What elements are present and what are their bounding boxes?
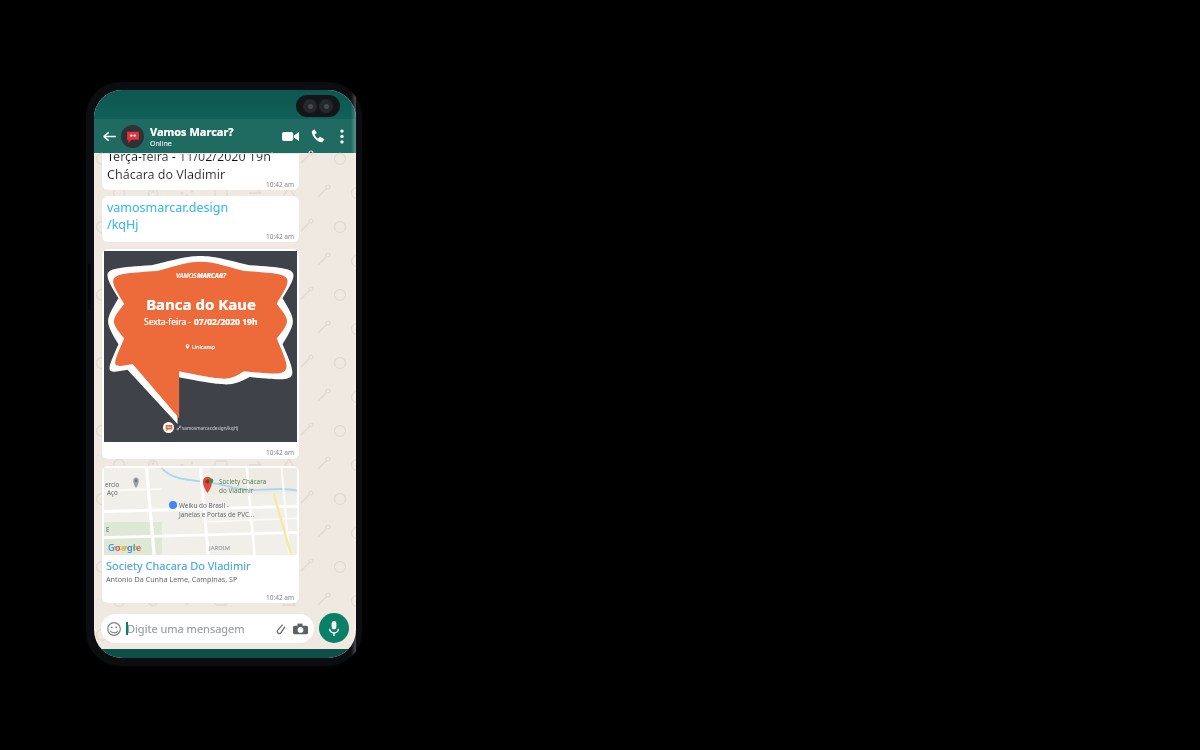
staticText: 10:42 am <box>266 232 295 241</box>
staticText: G <box>108 541 115 553</box>
button[interactable]: More options <box>332 126 352 146</box>
button[interactable]: Camera <box>293 623 308 635</box>
button[interactable]: Digite uma mensagem <box>101 614 314 643</box>
staticText: Antonio Da Cunha Leme, Campinas, SP <box>106 574 238 584</box>
staticText: VAMOS <box>176 271 197 280</box>
staticText: g <box>127 541 133 553</box>
staticText: l <box>133 541 136 553</box>
staticText: Chácara do Vladimir <box>107 166 226 183</box>
button[interactable]: Terça-feira - 11/02/2020 19h <box>102 154 299 190</box>
staticText: Sexta-feira - <box>144 316 194 328</box>
staticText: 07/02/2020 19h <box>194 316 258 328</box>
staticText: o <box>121 541 127 553</box>
staticText: 10:42 am <box>266 448 295 457</box>
button[interactable]: Record voice message <box>319 613 349 643</box>
staticText: vamosmarcar.design <box>107 199 229 216</box>
staticText: JARDIM <box>209 544 231 552</box>
staticText: o <box>115 541 121 553</box>
button[interactable]: VAMOS <box>102 249 299 459</box>
staticText: Aço <box>107 488 118 496</box>
staticText: ECANTO <box>114 544 138 552</box>
button[interactable]: vamosmarcar.design <box>102 196 299 242</box>
staticText: MARCAR? <box>197 271 226 280</box>
staticText: Unicamp <box>192 343 216 350</box>
button[interactable]: ercio <box>102 466 299 603</box>
staticText: Vamos Marcar? <box>150 124 234 139</box>
staticText: Terça-feira - 11/02/2020 19h <box>107 154 271 165</box>
staticText: e <box>136 541 142 553</box>
staticText: ercio <box>105 480 120 488</box>
button[interactable]: Attach <box>274 623 286 635</box>
staticText: 10:42 am <box>266 593 295 602</box>
staticText: Society Chacara Do Vladimir <box>106 558 251 573</box>
staticText: Society Chácara do Vladimir <box>219 477 267 495</box>
staticText: Digite uma mensagem <box>127 621 245 636</box>
staticText: 10:42 am <box>266 180 295 189</box>
staticText: E <box>106 525 110 533</box>
staticText: vamosmarcar.design/kqHj <box>182 425 239 431</box>
button[interactable]: Voice call <box>307 125 329 147</box>
button[interactable]: Back <box>99 126 119 146</box>
staticText: Weiku do Brasil - Janelas e Portas de PV… <box>179 501 255 519</box>
staticText: /kqHj <box>107 216 139 233</box>
staticText: Banca do Kaue <box>146 294 256 314</box>
button[interactable]: Video call <box>278 124 302 148</box>
staticText: Online <box>150 139 172 149</box>
